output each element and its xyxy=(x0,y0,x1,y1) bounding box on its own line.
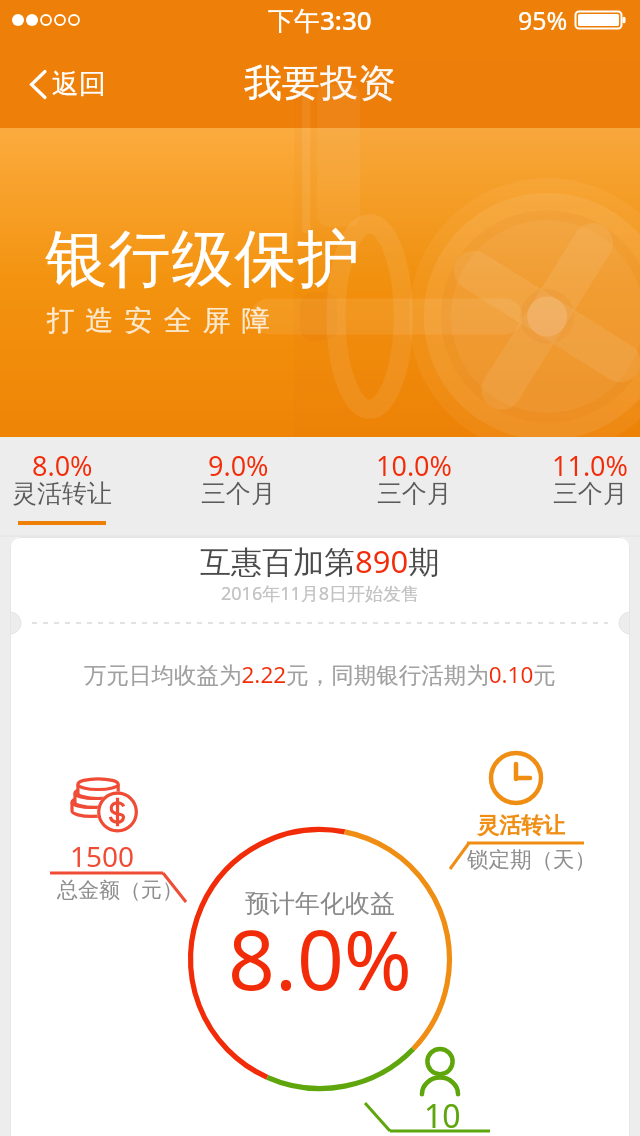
staticText: 11.0% xyxy=(552,447,629,484)
staticText: 三个月 xyxy=(377,478,452,509)
staticText: 预计年化收益 xyxy=(245,888,395,919)
staticText: 万元日均收益为2.22元，同期银行活期为0.10元 xyxy=(84,659,556,690)
button[interactable]: 10.0% xyxy=(326,437,502,537)
staticText: 打造安全屏障 xyxy=(41,303,275,338)
staticText: 银行级保护 xyxy=(45,220,360,298)
staticText: 2016年11月8日开始发售 xyxy=(221,581,420,606)
staticText: 锁定期（天） xyxy=(467,846,596,873)
button[interactable]: 9.0% xyxy=(150,437,326,537)
staticText: 95% xyxy=(518,3,568,37)
staticText: 三个月 xyxy=(553,478,628,509)
staticText: 10.0% xyxy=(376,447,453,484)
button[interactable]: 8.0% xyxy=(0,437,150,537)
staticText: 互惠百加第890期 xyxy=(200,540,440,582)
staticText: 下午3:30 xyxy=(268,2,372,38)
staticText: 1500 xyxy=(70,837,135,875)
staticText: 灵活转让 xyxy=(477,812,565,840)
staticText: 三个月 xyxy=(201,478,276,509)
staticText: 总金额（元） xyxy=(57,877,183,903)
staticText: 返回 xyxy=(52,67,106,101)
staticText: 8.0% xyxy=(32,447,93,484)
button[interactable]: 11.0% xyxy=(502,437,640,537)
staticText: 9.0% xyxy=(208,447,269,484)
staticText: 10 xyxy=(424,1094,461,1136)
button[interactable]: 返回 xyxy=(0,57,128,111)
staticText: 灵活转让 xyxy=(12,478,112,509)
staticText: 我要投资 xyxy=(244,59,396,107)
staticText: 8.0% xyxy=(228,902,412,1014)
